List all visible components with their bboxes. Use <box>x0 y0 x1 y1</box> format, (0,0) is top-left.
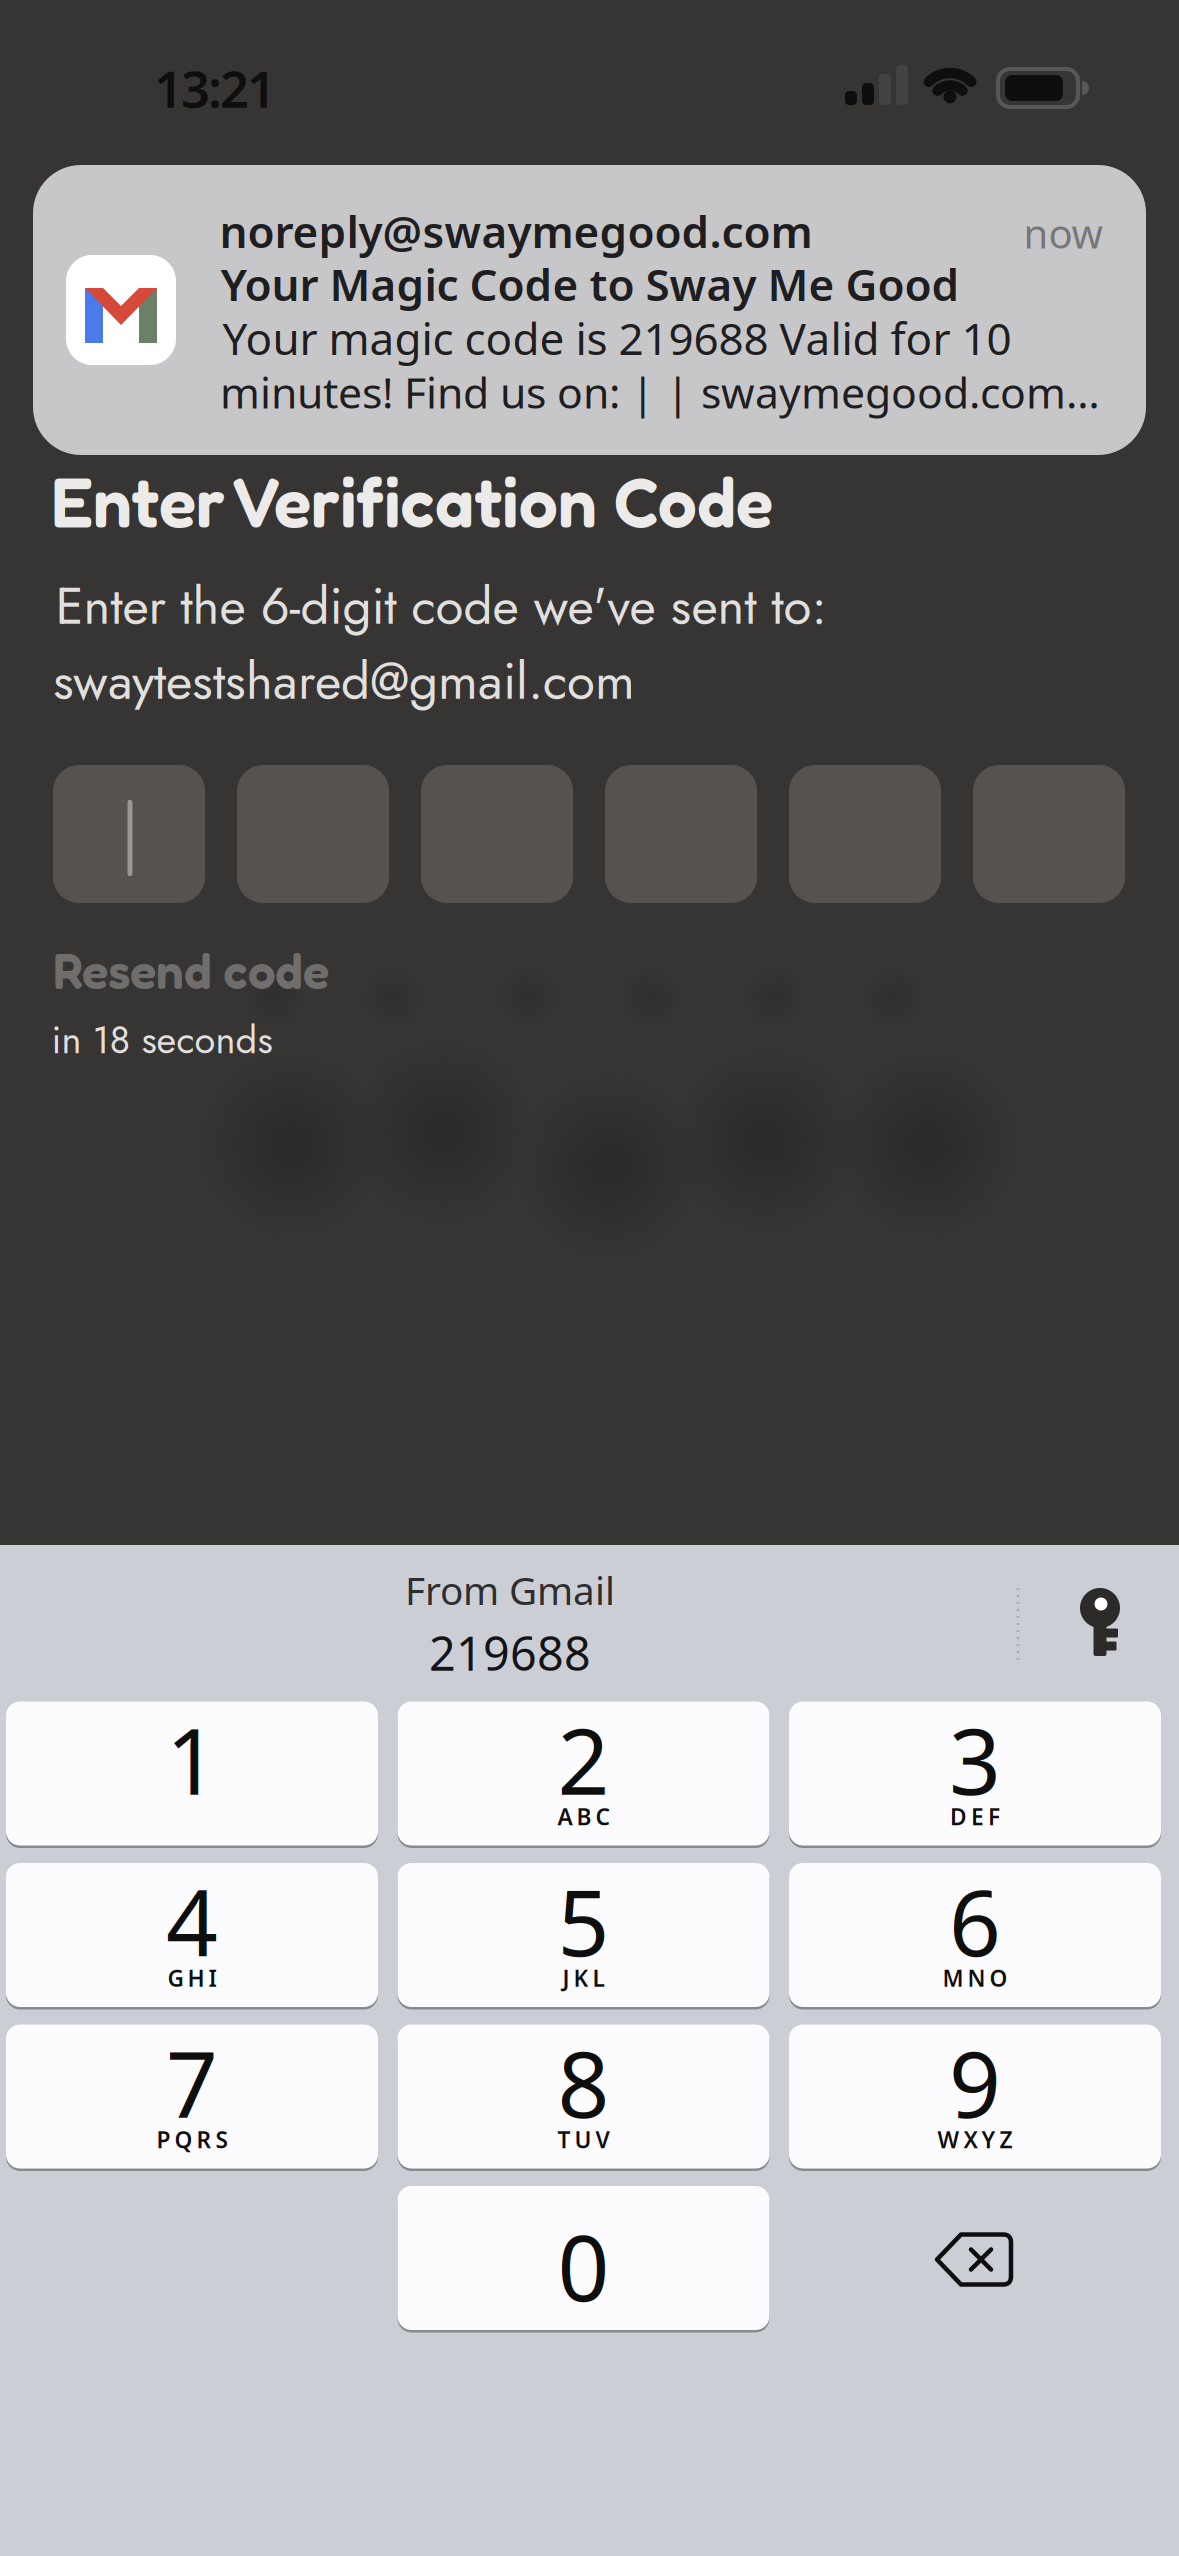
button[interactable]: 1 <box>6 1701 378 1848</box>
staticText: 1 <box>166 1699 218 1820</box>
button[interactable]: 7 <box>6 2024 378 2171</box>
staticText: 7 <box>166 2022 218 2143</box>
staticText: 0 <box>557 2206 609 2326</box>
staticText: 13:21 <box>154 54 276 122</box>
button[interactable]: Delete <box>937 2232 1011 2286</box>
staticText: Resend code <box>53 941 329 1001</box>
button[interactable]: 5 <box>397 1863 769 2010</box>
staticText: DEF <box>950 1801 1000 1831</box>
staticText: 3 <box>949 1699 1001 1820</box>
staticText: 9 <box>949 2022 1001 2143</box>
staticText: 219688 <box>429 1622 591 1684</box>
staticText: TUV <box>557 2124 609 2154</box>
staticText: ABC <box>557 1801 609 1831</box>
staticText: 2 <box>557 1699 609 1820</box>
staticText: swaytestshared@gmail.com <box>53 644 635 718</box>
staticText: Enter Verification Code <box>51 459 773 543</box>
staticText: From Gmail <box>405 1564 615 1616</box>
staticText: WXYZ <box>937 2124 1012 2154</box>
staticText: now <box>1023 206 1102 259</box>
button[interactable]: 9 <box>789 2024 1161 2171</box>
staticText: GHI <box>167 1963 216 1993</box>
staticText: PQRS <box>156 2124 227 2154</box>
staticText: in 18 seconds <box>51 1012 272 1067</box>
staticText: 5 <box>557 1861 609 1981</box>
staticText: Enter the 6-digit code we've sent to: <box>55 569 826 643</box>
button[interactable]: Notification: Your Magic Code to Sway Me… <box>33 165 1146 455</box>
button[interactable]: 0 <box>397 2186 769 2333</box>
staticText: minutes! Find us on: | | swaymegood.com… <box>220 364 1100 420</box>
staticText: JKL <box>562 1963 604 1993</box>
staticText: 6 <box>949 1861 1001 1981</box>
staticText: 8 <box>557 2022 609 2143</box>
staticText: MNO <box>942 1963 1007 1993</box>
staticText: Your magic code is 219688 Valid for 10 <box>222 309 1011 367</box>
button[interactable]: 8 <box>397 2024 769 2171</box>
button[interactable]: 6 <box>789 1863 1161 2010</box>
button[interactable]: Resend code <box>53 941 329 1001</box>
button[interactable]: Passwords <box>1076 1580 1124 1660</box>
button[interactable]: From Gmail <box>405 1564 615 1684</box>
button[interactable]: 2 <box>397 1701 769 1848</box>
button[interactable]: 3 <box>789 1701 1161 1848</box>
staticText: 4 <box>166 1861 218 1981</box>
staticText: noreply@swaymegood.com <box>219 202 812 260</box>
button[interactable]: 4 <box>6 1863 378 2010</box>
staticText: Your Magic Code to Sway Me Good <box>220 255 959 313</box>
